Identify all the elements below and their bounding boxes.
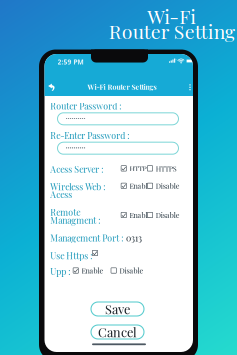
staticText: Disable — [119, 266, 143, 275]
staticText: Cancel — [98, 324, 137, 340]
staticText: Wi-Fi — [147, 3, 196, 29]
button[interactable]: HTTPS — [147, 164, 177, 173]
button[interactable]: Disable — [111, 266, 143, 275]
staticText: Enable — [129, 210, 151, 220]
button[interactable]: Cancel — [91, 325, 144, 339]
staticText: Acess — [50, 189, 72, 200]
staticText: •••••••••• — [65, 115, 85, 122]
staticText: 0313 — [126, 232, 142, 244]
staticText: Acess Server : — [50, 163, 103, 175]
button[interactable]: HTTP — [121, 164, 146, 173]
staticText: •••••••••• — [65, 145, 85, 152]
staticText: Disable — [156, 210, 180, 220]
staticText: Save — [105, 301, 130, 317]
button[interactable]: Save — [91, 302, 144, 316]
button[interactable]: Disable — [147, 210, 180, 220]
button[interactable]: More options — [186, 82, 193, 92]
staticText: Enable — [129, 181, 151, 191]
staticText: HTTP — [129, 164, 146, 173]
staticText: Wireless Web : — [50, 181, 105, 192]
staticText: Disable — [156, 181, 180, 191]
staticText: HTTPS — [156, 164, 177, 173]
staticText: Router Setting — [109, 18, 235, 44]
button[interactable]: Disable — [147, 181, 180, 191]
staticText: Re-Enter Password : — [50, 129, 129, 141]
staticText: Upp : — [50, 265, 70, 277]
staticText: Router Password : — [50, 100, 121, 112]
staticText: 2:59 PM — [57, 57, 83, 66]
staticText: Management Port : — [50, 232, 123, 244]
staticText: Use Https : — [50, 250, 92, 261]
staticText: Managment : — [50, 214, 100, 226]
staticText: Enable — [81, 266, 103, 275]
button[interactable]: Enable — [73, 266, 103, 275]
staticText: Wi-Fi Router Settings — [87, 82, 156, 92]
staticText: Remote — [50, 206, 80, 218]
button[interactable]: Enable — [121, 181, 151, 191]
button[interactable]: Enable — [121, 210, 151, 220]
button[interactable]: Back — [45, 80, 59, 94]
